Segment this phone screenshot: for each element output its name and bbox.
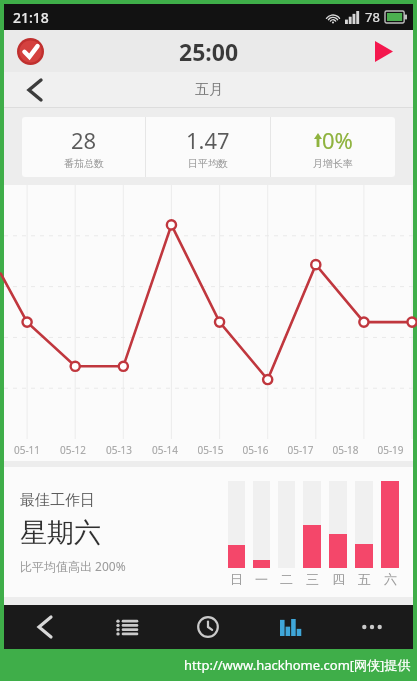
staticText: 三 xyxy=(306,571,319,587)
staticText: 05-19 xyxy=(368,443,413,457)
button[interactable]: Back xyxy=(4,605,85,649)
staticText: 二 xyxy=(280,571,293,587)
staticText: 28 xyxy=(71,125,97,155)
staticText: 05-12 xyxy=(50,443,96,457)
staticText: 0% xyxy=(322,125,353,155)
staticText: 05-18 xyxy=(323,443,368,457)
staticText: 六 xyxy=(384,571,397,587)
staticText: 25:00 xyxy=(179,36,239,67)
button[interactable]: Start timer xyxy=(367,34,401,68)
staticText: 1.47 xyxy=(186,125,230,155)
staticText: 番茄总数 xyxy=(64,157,104,170)
staticText: 05-16 xyxy=(233,443,278,457)
button[interactable]: Clock xyxy=(167,605,249,649)
staticText: 一 xyxy=(255,571,268,587)
staticText: 最佳工作日 xyxy=(20,491,95,510)
staticText: 月增长率 xyxy=(313,157,353,170)
staticText: 05-13 xyxy=(96,443,142,457)
button[interactable]: Statistics xyxy=(249,605,331,649)
button[interactable]: More xyxy=(331,605,413,649)
staticText: 05-17 xyxy=(278,443,323,457)
staticText: 05-15 xyxy=(188,443,233,457)
button[interactable]: Pomodoro xyxy=(14,35,46,67)
staticText: 21:18 xyxy=(13,8,49,27)
staticText: 日平均数 xyxy=(188,157,228,170)
staticText: 星期六 xyxy=(20,516,101,550)
staticText: 五月 xyxy=(195,81,223,99)
button[interactable]: Previous month xyxy=(4,72,66,108)
staticText: http://www.hackhome.com[网侠]提供 xyxy=(184,656,411,674)
staticText: 78 xyxy=(365,8,380,26)
staticText: 五 xyxy=(358,571,371,587)
staticText: 日 xyxy=(230,571,243,587)
staticText: 05-11 xyxy=(4,443,50,457)
staticText: 比平均值高出 200% xyxy=(20,558,126,574)
staticText: 四 xyxy=(332,571,345,587)
staticText: 05-14 xyxy=(142,443,188,457)
button[interactable]: List xyxy=(85,605,167,649)
